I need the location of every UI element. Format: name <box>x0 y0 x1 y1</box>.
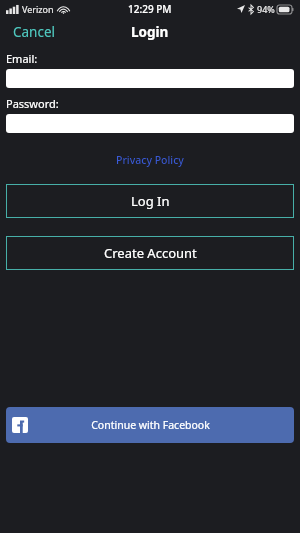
staticText: Login <box>131 23 169 41</box>
button[interactable]: Cancel <box>0 19 69 45</box>
button[interactable]: Log In <box>6 184 294 218</box>
staticText: Cancel <box>13 23 56 41</box>
staticText: Log In <box>131 192 170 210</box>
button[interactable] <box>6 69 294 88</box>
staticText: Continue with Facebook <box>91 418 210 432</box>
staticText: Password: <box>6 96 59 111</box>
button[interactable]: Continue with Facebook <box>6 407 294 443</box>
staticText: Verizon <box>22 3 54 15</box>
button[interactable] <box>6 114 294 133</box>
staticText: Create Account <box>104 244 197 262</box>
button[interactable]: Privacy Policy <box>108 151 192 169</box>
staticText: 94% <box>257 3 275 15</box>
staticText: Email: <box>6 51 38 66</box>
staticText: 12:29 PM <box>128 2 172 16</box>
staticText: Privacy Policy <box>116 153 184 167</box>
button[interactable]: Create Account <box>6 236 294 270</box>
